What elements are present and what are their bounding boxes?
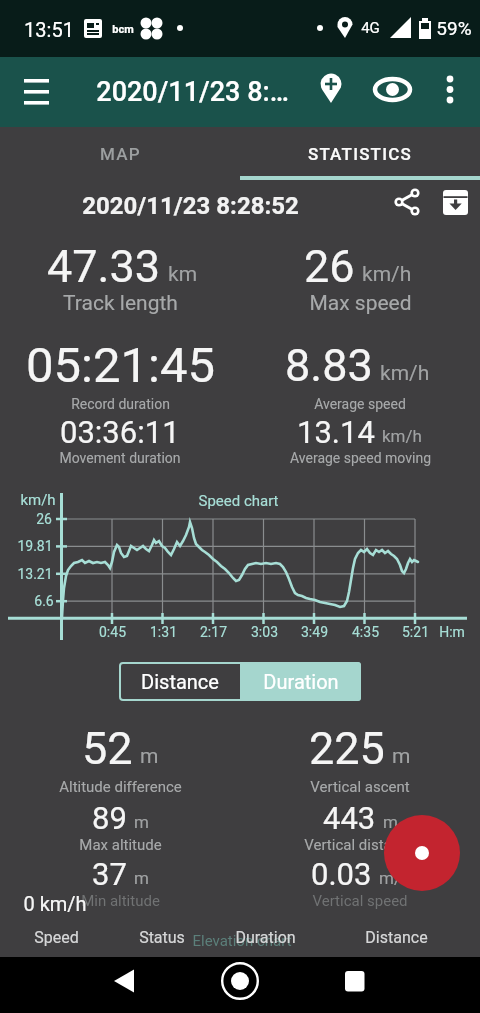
- staticText: 05:21:45: [26, 337, 215, 394]
- staticText: Movement duration: [59, 450, 181, 466]
- staticText: m: [392, 744, 411, 769]
- button[interactable]: Duration: [240, 662, 361, 701]
- staticText: Distance: [365, 928, 428, 947]
- staticText: 2:17: [200, 624, 227, 640]
- staticText: Min altitude: [81, 892, 160, 910]
- staticText: 0 km/h: [23, 892, 87, 915]
- staticText: 1:31: [150, 624, 177, 640]
- staticText: 89: [92, 800, 127, 836]
- staticText: 4:35: [352, 624, 379, 640]
- staticText: Max altitude: [79, 836, 162, 854]
- staticText: 3:03: [251, 624, 278, 640]
- staticText: Vertical ascent: [310, 778, 410, 796]
- staticText: 2020/11/23 8:28:52: [82, 192, 299, 220]
- staticText: m: [134, 868, 149, 888]
- staticText: Max speed: [309, 291, 412, 316]
- button[interactable]: [12, 79, 62, 105]
- staticText: km/h: [362, 262, 412, 287]
- staticText: 13.21: [17, 566, 53, 582]
- staticText: Speed: [34, 928, 79, 947]
- staticText: Speed chart: [198, 492, 279, 510]
- staticText: 3:49: [301, 624, 328, 640]
- staticText: Vertical speed: [312, 892, 408, 910]
- staticText: m: [383, 812, 398, 832]
- staticText: 443: [323, 800, 376, 836]
- staticText: 26: [304, 240, 355, 293]
- staticText: 26: [36, 511, 52, 527]
- staticText: Status: [139, 928, 185, 947]
- staticText: 59%: [436, 17, 472, 39]
- staticText: 2020/11/23 8:…: [96, 76, 289, 108]
- staticText: STATISTICS: [308, 144, 412, 164]
- button[interactable]: [372, 68, 414, 112]
- staticText: km/h: [380, 361, 430, 386]
- staticText: 225: [309, 722, 385, 775]
- staticText: 6.6: [34, 593, 54, 609]
- button[interactable]: [441, 189, 471, 223]
- staticText: m: [140, 744, 159, 769]
- button[interactable]: [216, 963, 264, 1007]
- button[interactable]: [310, 68, 352, 112]
- staticText: 37: [92, 856, 127, 892]
- staticText: 52: [82, 722, 133, 775]
- staticText: 13.14: [297, 414, 375, 450]
- button[interactable]: Distance: [119, 662, 240, 701]
- button[interactable]: [384, 815, 460, 891]
- button[interactable]: [432, 68, 470, 112]
- staticText: Distance: [141, 670, 219, 693]
- staticText: MAP: [100, 144, 141, 164]
- button[interactable]: STATISTICS: [240, 127, 480, 180]
- staticText: Vertical distance: [304, 836, 416, 854]
- staticText: 4G: [361, 19, 380, 37]
- staticText: m: [134, 812, 149, 832]
- staticText: 03:36:11: [60, 414, 180, 450]
- staticText: bcm: [112, 23, 134, 36]
- staticText: 13:51: [24, 18, 74, 41]
- staticText: Duration: [235, 928, 296, 947]
- staticText: km/h: [20, 491, 56, 509]
- staticText: Track length: [63, 291, 178, 316]
- staticText: Elevation chart: [192, 932, 292, 950]
- staticText: 5:21: [402, 624, 429, 640]
- staticText: km/h: [382, 426, 422, 446]
- staticText: km: [168, 262, 198, 287]
- staticText: m/s: [379, 868, 410, 888]
- button[interactable]: [390, 186, 426, 226]
- button[interactable]: MAP: [0, 127, 240, 180]
- button[interactable]: [331, 963, 379, 1007]
- staticText: 19.81: [17, 538, 53, 554]
- staticText: 0:45: [99, 624, 126, 640]
- staticText: 0.03: [311, 856, 372, 892]
- staticText: Average speed: [314, 396, 406, 412]
- staticText: Altitude difference: [59, 778, 182, 796]
- staticText: 8.83: [285, 339, 373, 392]
- staticText: Average speed moving: [290, 450, 431, 466]
- staticText: Duration: [263, 670, 339, 693]
- staticText: 47.33: [47, 240, 161, 293]
- button[interactable]: [100, 963, 148, 1007]
- staticText: Record duration: [71, 396, 170, 412]
- staticText: H:m: [439, 624, 465, 640]
